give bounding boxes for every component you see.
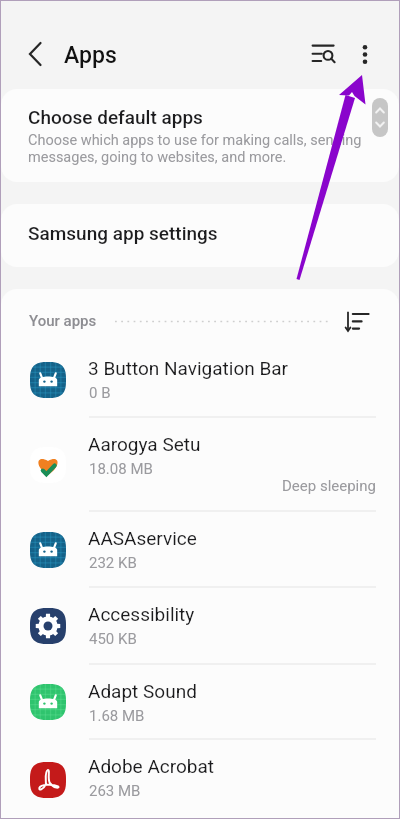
button[interactable]: Aarogya Setu: [1, 418, 399, 512]
staticText: AASAservice: [88, 527, 197, 549]
staticText: Aarogya Setu: [88, 433, 201, 455]
staticText: Apps: [64, 42, 117, 69]
button[interactable]: Samsung app settings: [1, 204, 399, 267]
button[interactable]: Sort: [325, 307, 367, 349]
button[interactable]: AASAservice: [1, 512, 399, 588]
button[interactable]: Accessibility: [1, 588, 399, 665]
button[interactable]: Back: [14, 33, 56, 75]
staticText: Adapt Sound: [88, 680, 197, 702]
button[interactable]: More options: [342, 32, 387, 77]
staticText: Choose default apps: [28, 106, 203, 128]
staticText: 1.68 MB: [89, 707, 145, 725]
button[interactable]: Adobe Acrobat: [1, 740, 399, 818]
button[interactable]: Choose default apps: [1, 89, 399, 182]
button[interactable]: Adapt Sound: [1, 665, 399, 740]
staticText: Adobe Acrobat: [88, 755, 215, 777]
staticText: 3 Button Navigation Bar: [88, 357, 289, 379]
button[interactable]: Search: [303, 33, 347, 77]
staticText: Accessibility: [88, 603, 195, 625]
staticText: Choose which apps to use for making call…: [28, 132, 362, 166]
staticText: Your apps: [29, 312, 97, 330]
staticText: 450 KB: [89, 630, 137, 648]
staticText: 263 MB: [89, 782, 141, 800]
staticText: 0 B: [89, 384, 111, 402]
button[interactable]: 3 Button Navigation Bar: [1, 342, 399, 418]
staticText: 232 KB: [89, 554, 137, 572]
staticText: 18.08 MB: [89, 460, 153, 478]
button[interactable]: Scroll: [372, 98, 388, 137]
staticText: Samsung app settings: [28, 222, 218, 244]
staticText: Deep sleeping: [282, 477, 376, 495]
